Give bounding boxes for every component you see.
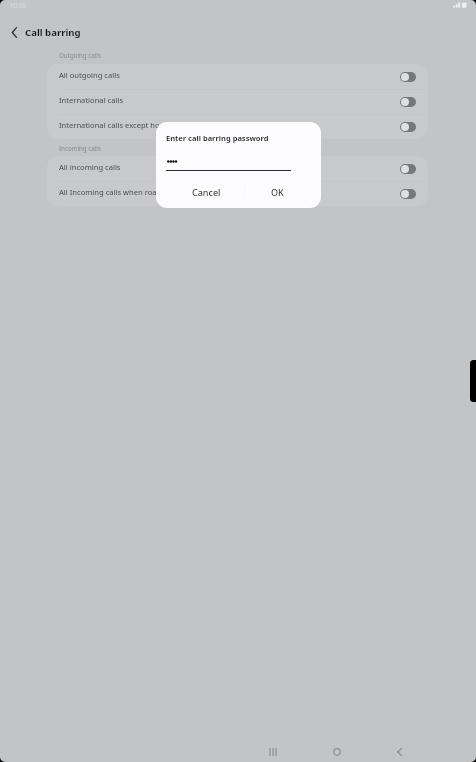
staticText: 10:00 (10, 1, 26, 9)
button[interactable]: Recent apps (260, 739, 285, 762)
staticText: All outgoing calls (59, 70, 396, 80)
button[interactable]: Navigate up (3, 21, 26, 44)
button[interactable]: International calls (47, 89, 428, 114)
button[interactable]: All Incoming calls when roaming (47, 181, 428, 206)
button[interactable]: Home (324, 739, 349, 762)
button[interactable]: Back (387, 739, 412, 762)
button[interactable]: OK (247, 182, 308, 202)
staticText: Call barring (25, 26, 81, 39)
button[interactable]: Toggle (400, 189, 416, 199)
button[interactable]: All outgoing calls (47, 64, 428, 89)
staticText: Incoming calls (59, 144, 101, 152)
staticText: All incoming calls (59, 162, 396, 172)
staticText: Cancel (192, 186, 221, 198)
button[interactable]: Toggle (400, 164, 416, 174)
button[interactable]: International calls except home (47, 114, 428, 139)
staticText: Enter call barring password (166, 133, 269, 143)
staticText: International calls (59, 95, 396, 105)
button[interactable]: Toggle (400, 97, 416, 107)
button[interactable]: Toggle (400, 72, 416, 82)
staticText: International calls except home (59, 120, 396, 130)
button[interactable]: All incoming calls (47, 156, 428, 181)
staticText: OK (271, 186, 284, 198)
staticText: Outgoing calls (59, 51, 101, 59)
button[interactable]: Toggle (400, 122, 416, 132)
staticText: All Incoming calls when roaming (59, 187, 396, 197)
button[interactable]: Cancel (173, 182, 239, 202)
